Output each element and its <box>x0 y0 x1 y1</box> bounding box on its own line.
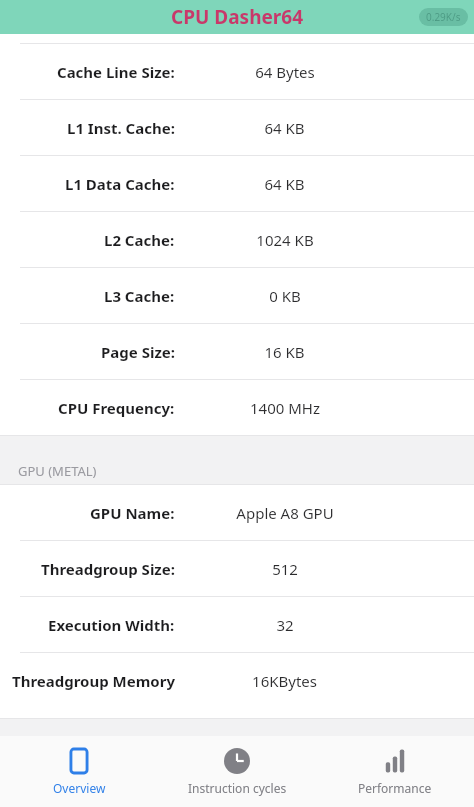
staticText: 0.29K/s <box>426 10 461 24</box>
button[interactable]: Instruction cycles <box>158 736 316 807</box>
staticText: 1400 MHz <box>250 398 320 418</box>
staticText: Threadgroup Memory <box>12 671 175 691</box>
button[interactable]: GPU Name: <box>0 485 474 540</box>
staticText: GPU Name: <box>90 503 175 523</box>
staticText: 16KBytes <box>252 671 317 691</box>
button[interactable]: L1 Data Cache: <box>0 156 474 211</box>
button[interactable]: Threadgroup Size: <box>0 541 474 596</box>
staticText: 16 KB <box>264 342 305 362</box>
staticText: 64 Bytes <box>255 62 315 82</box>
staticText: L1 Inst. Cache: <box>67 118 175 138</box>
other: Overview <box>66 748 92 774</box>
staticText: L3 Cache: <box>104 286 175 306</box>
button[interactable]: L2 Cache: <box>0 212 474 267</box>
staticText: Overview <box>53 780 106 796</box>
staticText: 512 <box>272 559 298 579</box>
button[interactable]: Performance <box>316 736 474 807</box>
button[interactable]: Execution Width: <box>0 597 474 652</box>
staticText: 32 <box>276 615 294 635</box>
staticText: Execution Width: <box>48 615 175 635</box>
button[interactable]: Cache Line Size: <box>0 44 474 99</box>
button[interactable]: Overview <box>0 736 158 807</box>
staticText: Threadgroup Size: <box>41 559 175 579</box>
staticText: Cache Line Size: <box>57 62 175 82</box>
button[interactable]: L3 Cache: <box>0 268 474 323</box>
button[interactable]: Page Size: <box>0 324 474 379</box>
staticText: Apple A8 GPU <box>236 503 334 523</box>
staticText: L1 Data Cache: <box>65 174 175 194</box>
other: Instruction cycles <box>224 748 250 774</box>
button[interactable]: L1 Inst. Cache: <box>0 100 474 155</box>
staticText: CPU Frequency: <box>58 398 175 418</box>
other: Performance <box>382 748 408 774</box>
button[interactable]: Threadgroup Memory <box>0 653 474 708</box>
staticText: 64 KB <box>264 174 305 194</box>
staticText: L2 Cache: <box>104 230 175 250</box>
staticText: 64 KB <box>264 118 305 138</box>
staticText: CPU Dasher64 <box>171 4 304 30</box>
staticText: 0 KB <box>269 286 301 306</box>
staticText: GPU (METAL) <box>18 462 97 480</box>
staticText: 1024 KB <box>256 230 314 250</box>
staticText: Page Size: <box>101 342 175 362</box>
staticText: Performance <box>358 780 432 796</box>
button[interactable]: CPU Frequency: <box>0 380 474 435</box>
staticText: Instruction cycles <box>188 780 287 796</box>
